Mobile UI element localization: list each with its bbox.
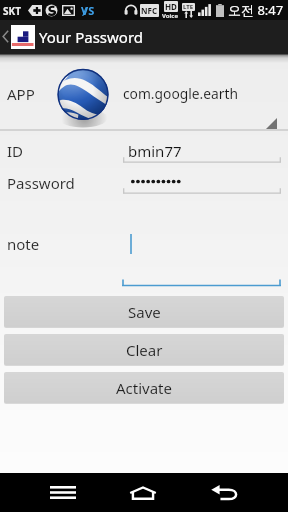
- staticText: com.google.earth: [123, 84, 238, 103]
- staticText: 오전 8:47: [228, 1, 284, 19]
- button[interactable]: Select app: [0, 58, 288, 131]
- staticText: Save: [128, 302, 161, 322]
- button[interactable]: note field: [122, 226, 281, 286]
- button[interactable]: Navigate up: [0, 20, 37, 54]
- staticText: Activate: [116, 378, 172, 398]
- staticText: Your Password: [39, 27, 144, 47]
- button[interactable]: Clear: [4, 334, 284, 365]
- button[interactable]: ID field: [123, 136, 280, 162]
- button[interactable]: Activate: [4, 372, 284, 403]
- staticText: Password: [7, 173, 75, 193]
- button[interactable]: Back: [194, 473, 254, 512]
- button[interactable]: Save: [4, 296, 284, 327]
- staticText: APP: [7, 84, 35, 104]
- button[interactable]: Password field: [123, 168, 280, 194]
- staticText: ID: [7, 141, 24, 161]
- staticText: note: [7, 234, 40, 254]
- staticText: LTE: [183, 3, 194, 11]
- staticText: SKT: [3, 4, 21, 18]
- staticText: bmin77: [128, 141, 182, 161]
- staticText: HD: [165, 1, 177, 12]
- staticText: Clear: [126, 340, 163, 360]
- button[interactable]: Home: [113, 473, 173, 512]
- staticText: V̸S: [81, 3, 95, 18]
- button[interactable]: Recent apps: [33, 473, 93, 512]
- staticText: NFC: [141, 5, 158, 16]
- staticText: Voice: [162, 12, 179, 20]
